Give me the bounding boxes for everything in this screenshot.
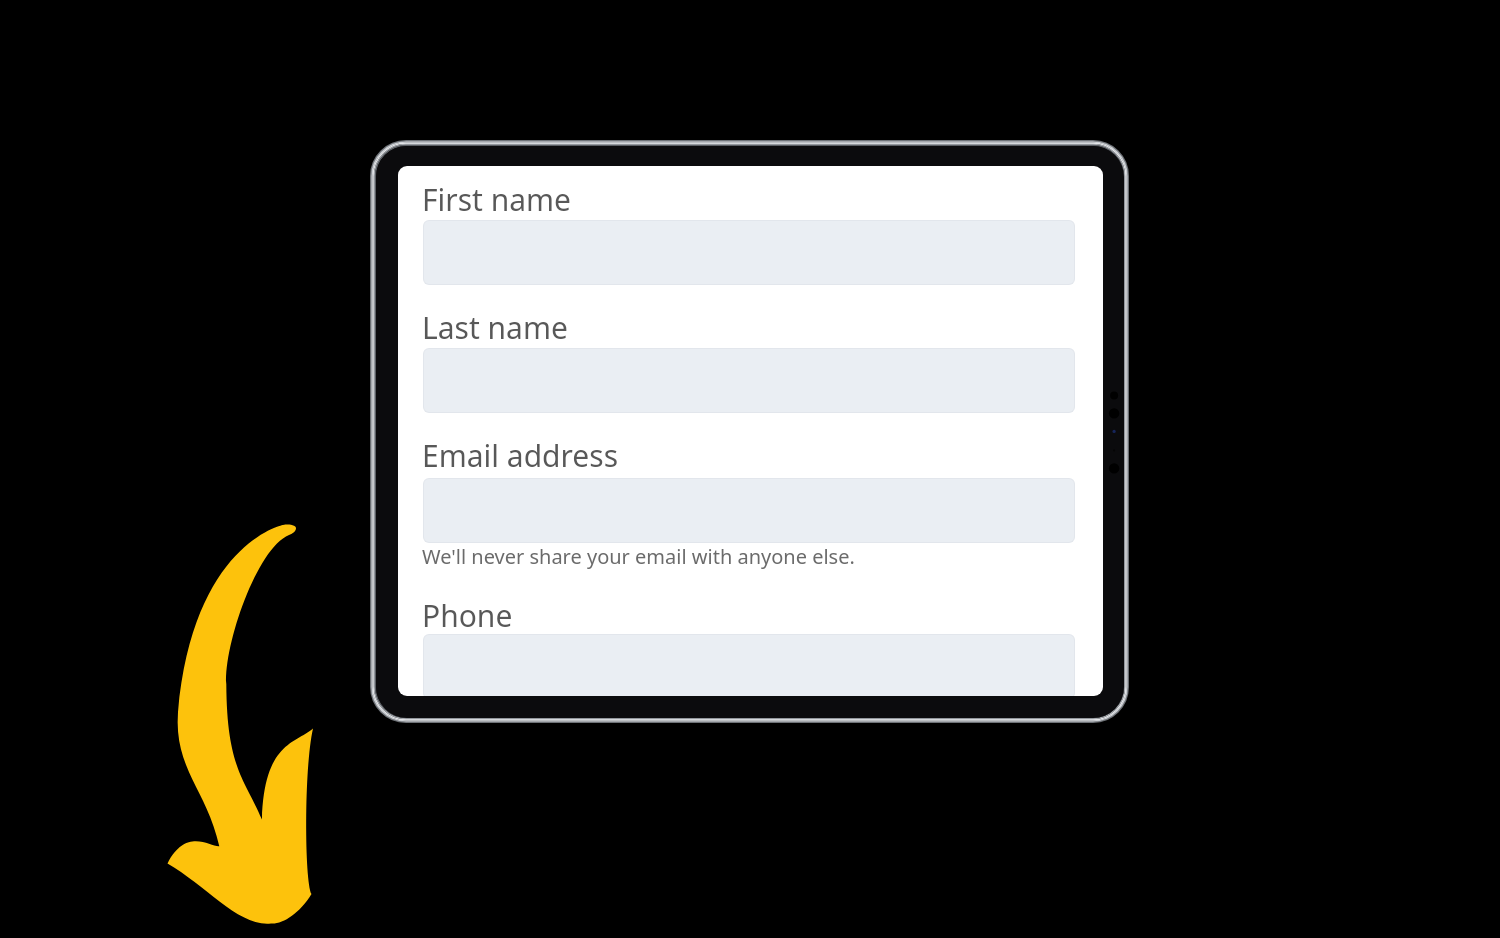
staticText: Phone xyxy=(422,595,513,636)
staticText: We'll never share your email with anyone… xyxy=(422,543,855,570)
staticText: Last name xyxy=(422,307,568,348)
button[interactable]: Scroll down to continue xyxy=(167,524,314,924)
staticText: First name xyxy=(422,179,572,220)
staticText: Email address xyxy=(422,435,619,476)
